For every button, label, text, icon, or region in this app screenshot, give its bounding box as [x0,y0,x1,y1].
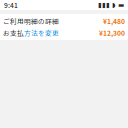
staticText: お支払 [3,28,24,38]
staticText: ¥1,480 [103,16,125,26]
staticText: ご利用明細の詳細 [3,16,59,26]
staticText: 9:41 [4,0,18,10]
staticText: ¥12,300 [99,28,125,38]
staticText: 方法を変更 [24,28,59,38]
staticText: ▮▮▮ ◗ ▬ [98,1,124,9]
